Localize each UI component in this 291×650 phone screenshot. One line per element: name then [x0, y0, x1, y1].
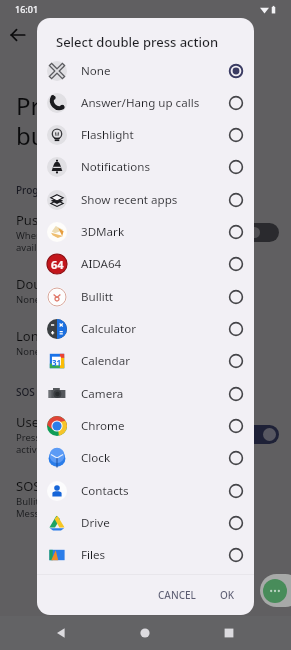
- button[interactable]: Toggle: [245, 425, 279, 444]
- staticText: SOS app: [16, 477, 68, 495]
- staticText: Use SOS button: [16, 413, 112, 431]
- staticText: Flashlight: [81, 127, 227, 143]
- button[interactable]: Long press: [0, 321, 291, 363]
- button[interactable]: Files: [37, 539, 254, 571]
- staticText: Files: [81, 547, 227, 563]
- staticText: Drive: [81, 515, 227, 531]
- button[interactable]: Show recent apps: [37, 184, 254, 216]
- button[interactable]: Answer/Hang up calls: [37, 87, 254, 119]
- staticText: SOS button: [16, 385, 70, 399]
- button[interactable]: Bullitt: [37, 281, 254, 313]
- button[interactable]: Chrome: [37, 410, 254, 442]
- button[interactable]: Use SOS button: [0, 413, 291, 455]
- staticText: Double press: [16, 275, 97, 293]
- button[interactable]: Back: [6, 23, 30, 47]
- button[interactable]: Camera: [37, 378, 254, 410]
- staticText: Press and hold to activate: [16, 431, 94, 455]
- button[interactable]: Recents: [215, 616, 243, 650]
- staticText: Programmable button: [16, 183, 123, 197]
- staticText: Select double press action: [56, 33, 219, 51]
- staticText: 16:01: [15, 3, 39, 15]
- button[interactable]: OK: [213, 582, 242, 608]
- button[interactable]: Notifications: [37, 151, 254, 183]
- button[interactable]: Double press: [0, 269, 291, 311]
- staticText: Contacts: [81, 483, 227, 499]
- button[interactable]: More options: [260, 574, 291, 607]
- staticText: When no app is available: [16, 229, 85, 253]
- button[interactable]: Toggle: [245, 223, 279, 242]
- button[interactable]: Home: [131, 616, 159, 650]
- staticText: 31: [52, 357, 62, 368]
- staticText: Programmable button for Bullitt OS: [16, 89, 242, 152]
- button[interactable]: Back: [47, 616, 75, 650]
- staticText: Calendar: [81, 353, 227, 369]
- button[interactable]: Push to talk: [0, 211, 291, 253]
- staticText: Notifications: [81, 159, 227, 175]
- button[interactable]: Contacts: [37, 475, 254, 507]
- button[interactable]: Calculator: [37, 313, 254, 345]
- button[interactable]: Flashlight: [37, 119, 254, 151]
- staticText: 3DMark: [81, 224, 227, 240]
- button[interactable]: SOS app: [0, 477, 291, 519]
- staticText: Clock: [81, 450, 227, 466]
- button[interactable]: None: [37, 55, 254, 87]
- button[interactable]: 31: [37, 345, 254, 377]
- button[interactable]: Drive: [37, 507, 254, 539]
- staticText: Show recent apps: [81, 192, 227, 208]
- staticText: None: [16, 293, 41, 306]
- staticText: Answer/Hang up calls: [81, 95, 227, 111]
- staticText: None: [81, 63, 227, 79]
- staticText: Bullitt: [81, 289, 227, 305]
- staticText: AIDA64: [81, 256, 227, 272]
- staticText: Bullitt Satellite Messenger: [16, 495, 81, 519]
- staticText: Long press: [16, 327, 83, 345]
- staticText: OK: [220, 588, 235, 602]
- button[interactable]: 3DMark: [37, 216, 254, 248]
- staticText: Camera: [81, 386, 227, 402]
- staticText: Push to talk: [16, 211, 88, 229]
- staticText: Chrome: [81, 418, 227, 434]
- button[interactable]: CANCEL: [151, 582, 203, 608]
- staticText: 64: [51, 257, 64, 272]
- staticText: Calculator: [81, 321, 227, 337]
- staticText: None: [16, 345, 41, 358]
- button[interactable]: Clock: [37, 442, 254, 474]
- staticText: CANCEL: [158, 588, 196, 602]
- button[interactable]: 64: [37, 248, 254, 280]
